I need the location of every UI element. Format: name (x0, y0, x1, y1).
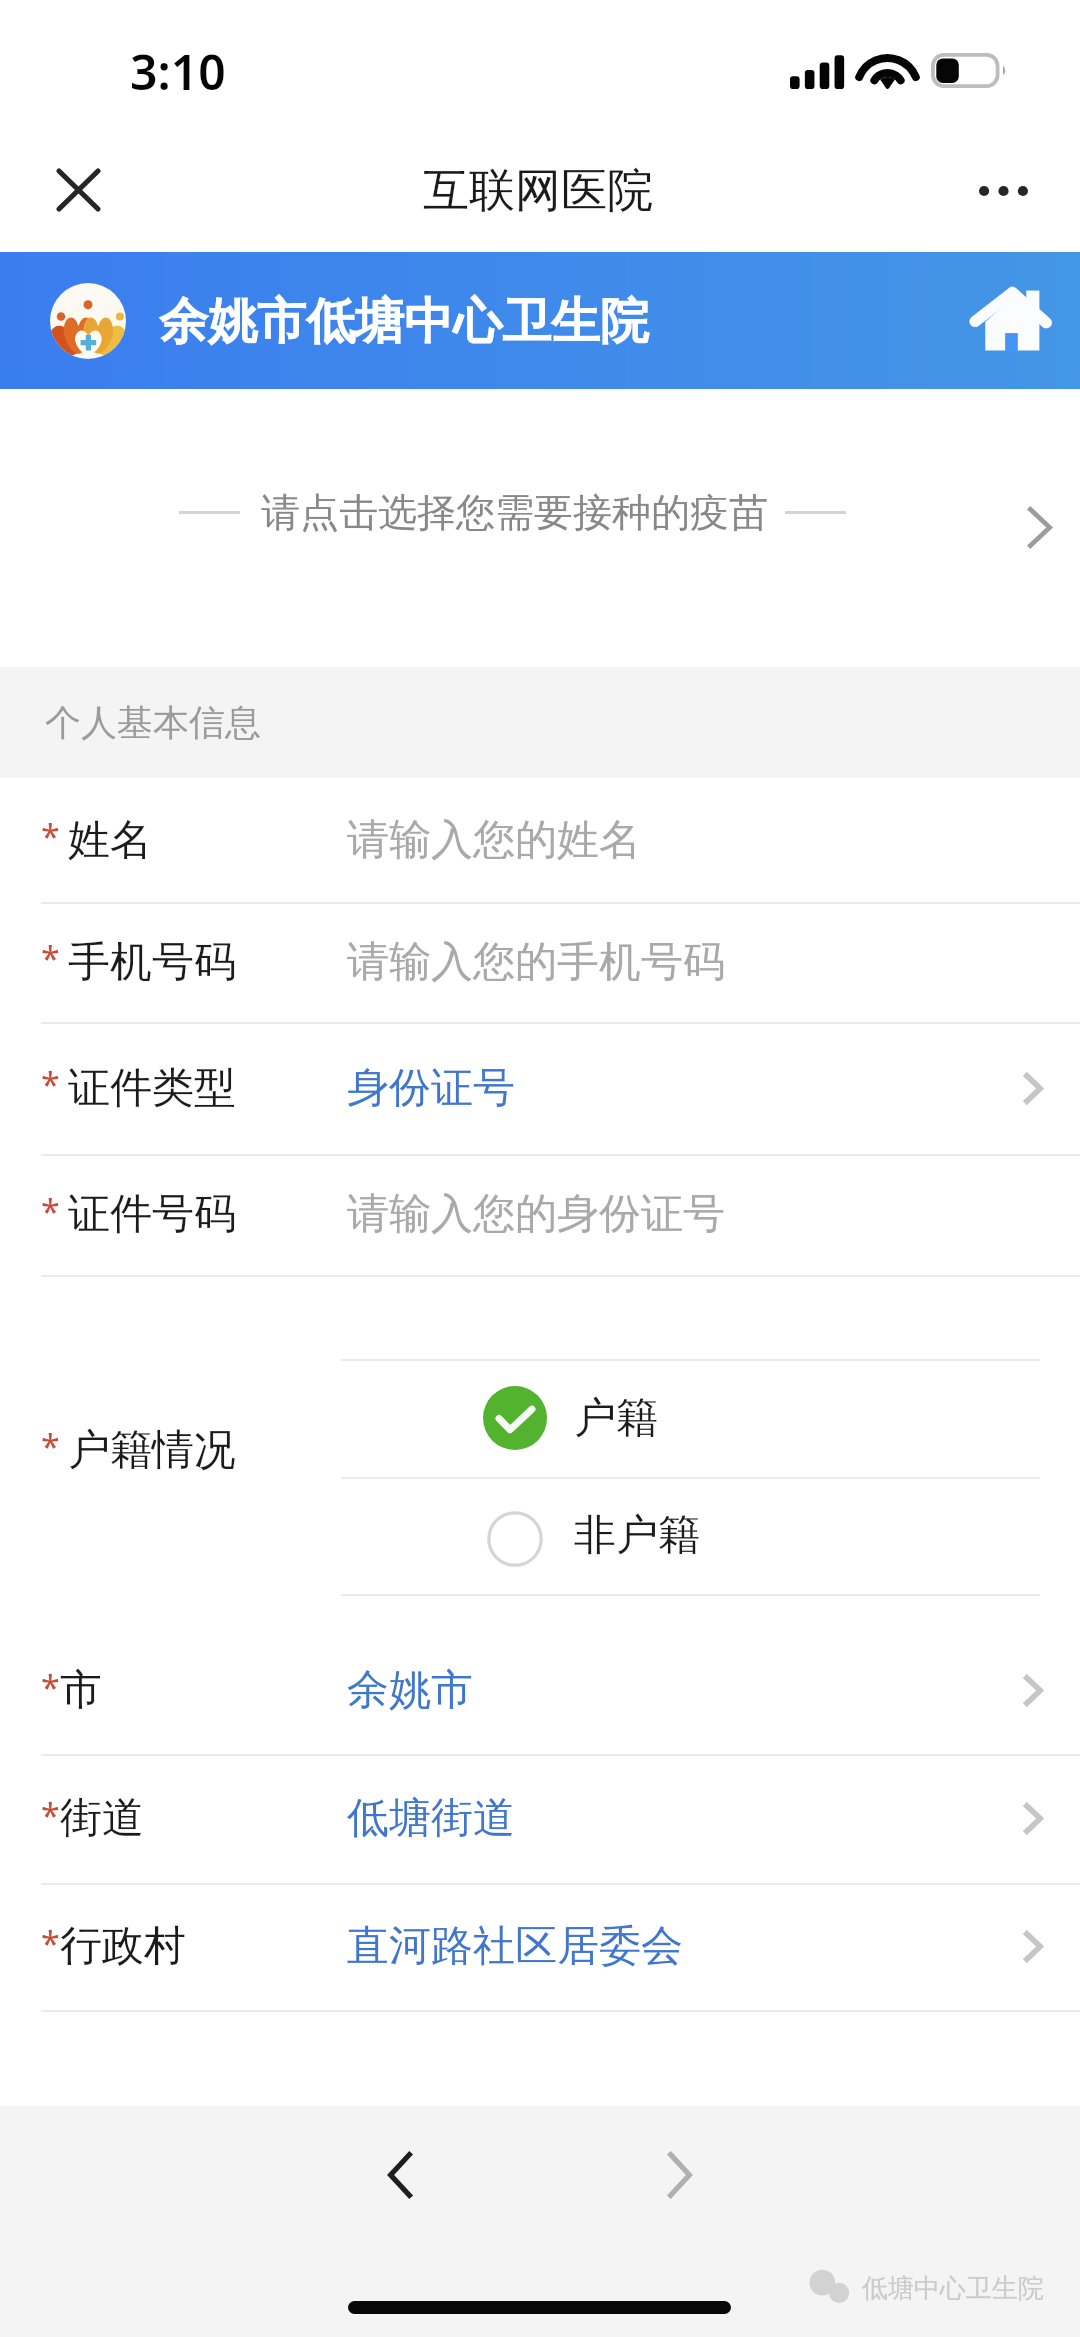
staticText: 低塘街道 (347, 1792, 515, 1845)
button[interactable]: Forward (650, 2134, 710, 2216)
staticText: 市 (60, 1664, 102, 1717)
staticText: 户籍情况 (68, 1424, 236, 1477)
staticText: 3:10 (130, 39, 226, 104)
staticText: 个人基本信息 (45, 700, 261, 745)
staticText: 请输入您的手机号码 (347, 936, 725, 989)
staticText: * (41, 935, 60, 981)
button[interactable]: * (0, 902, 1080, 1022)
staticText: * (41, 1792, 60, 1838)
button[interactable]: Home (957, 272, 1063, 368)
staticText: 手机号码 (68, 936, 236, 989)
staticText: 街道 (60, 1792, 144, 1845)
button[interactable]: 请点击选择您需要接种的疫苗 (0, 389, 1080, 667)
button[interactable]: 户籍 (0, 1359, 1080, 1477)
staticText: * (41, 1188, 60, 1234)
button[interactable]: 非户籍 (0, 1477, 1080, 1594)
staticText: * (41, 1664, 60, 1710)
staticText: 证件类型 (68, 1062, 236, 1115)
button[interactable]: Close (38, 150, 118, 230)
staticText: * (41, 1423, 60, 1469)
button[interactable]: * (0, 1022, 1080, 1154)
staticText: 请输入您的姓名 (347, 814, 641, 867)
button[interactable]: * (0, 1883, 1080, 2010)
staticText: 身份证号 (347, 1062, 515, 1115)
button[interactable]: * (0, 1627, 1080, 1754)
staticText: 非户籍 (574, 1509, 700, 1562)
staticText: * (41, 1920, 60, 1966)
staticText: 请输入您的身份证号 (347, 1188, 725, 1241)
staticText: 请点击选择您需要接种的疫苗 (261, 488, 768, 537)
button[interactable]: Back (370, 2134, 430, 2216)
button[interactable]: * (0, 778, 1080, 902)
staticText: * (41, 813, 60, 859)
staticText: 余姚市 (347, 1664, 473, 1717)
staticText: 低塘中心卫生院 (862, 2272, 1044, 2305)
staticText: 余姚市低塘中心卫生院 (159, 291, 649, 353)
button[interactable]: More options (963, 151, 1043, 231)
staticText: * (41, 1061, 60, 1107)
staticText: 互联网医院 (0, 162, 1078, 220)
staticText: 户籍 (574, 1392, 658, 1445)
staticText: 直河路社区居委会 (347, 1920, 683, 1973)
staticText: 证件号码 (68, 1188, 236, 1241)
button[interactable]: * (0, 1154, 1080, 1275)
staticText: 行政村 (60, 1920, 186, 1973)
staticText: 姓名 (68, 814, 152, 867)
button[interactable]: * (0, 1754, 1080, 1883)
